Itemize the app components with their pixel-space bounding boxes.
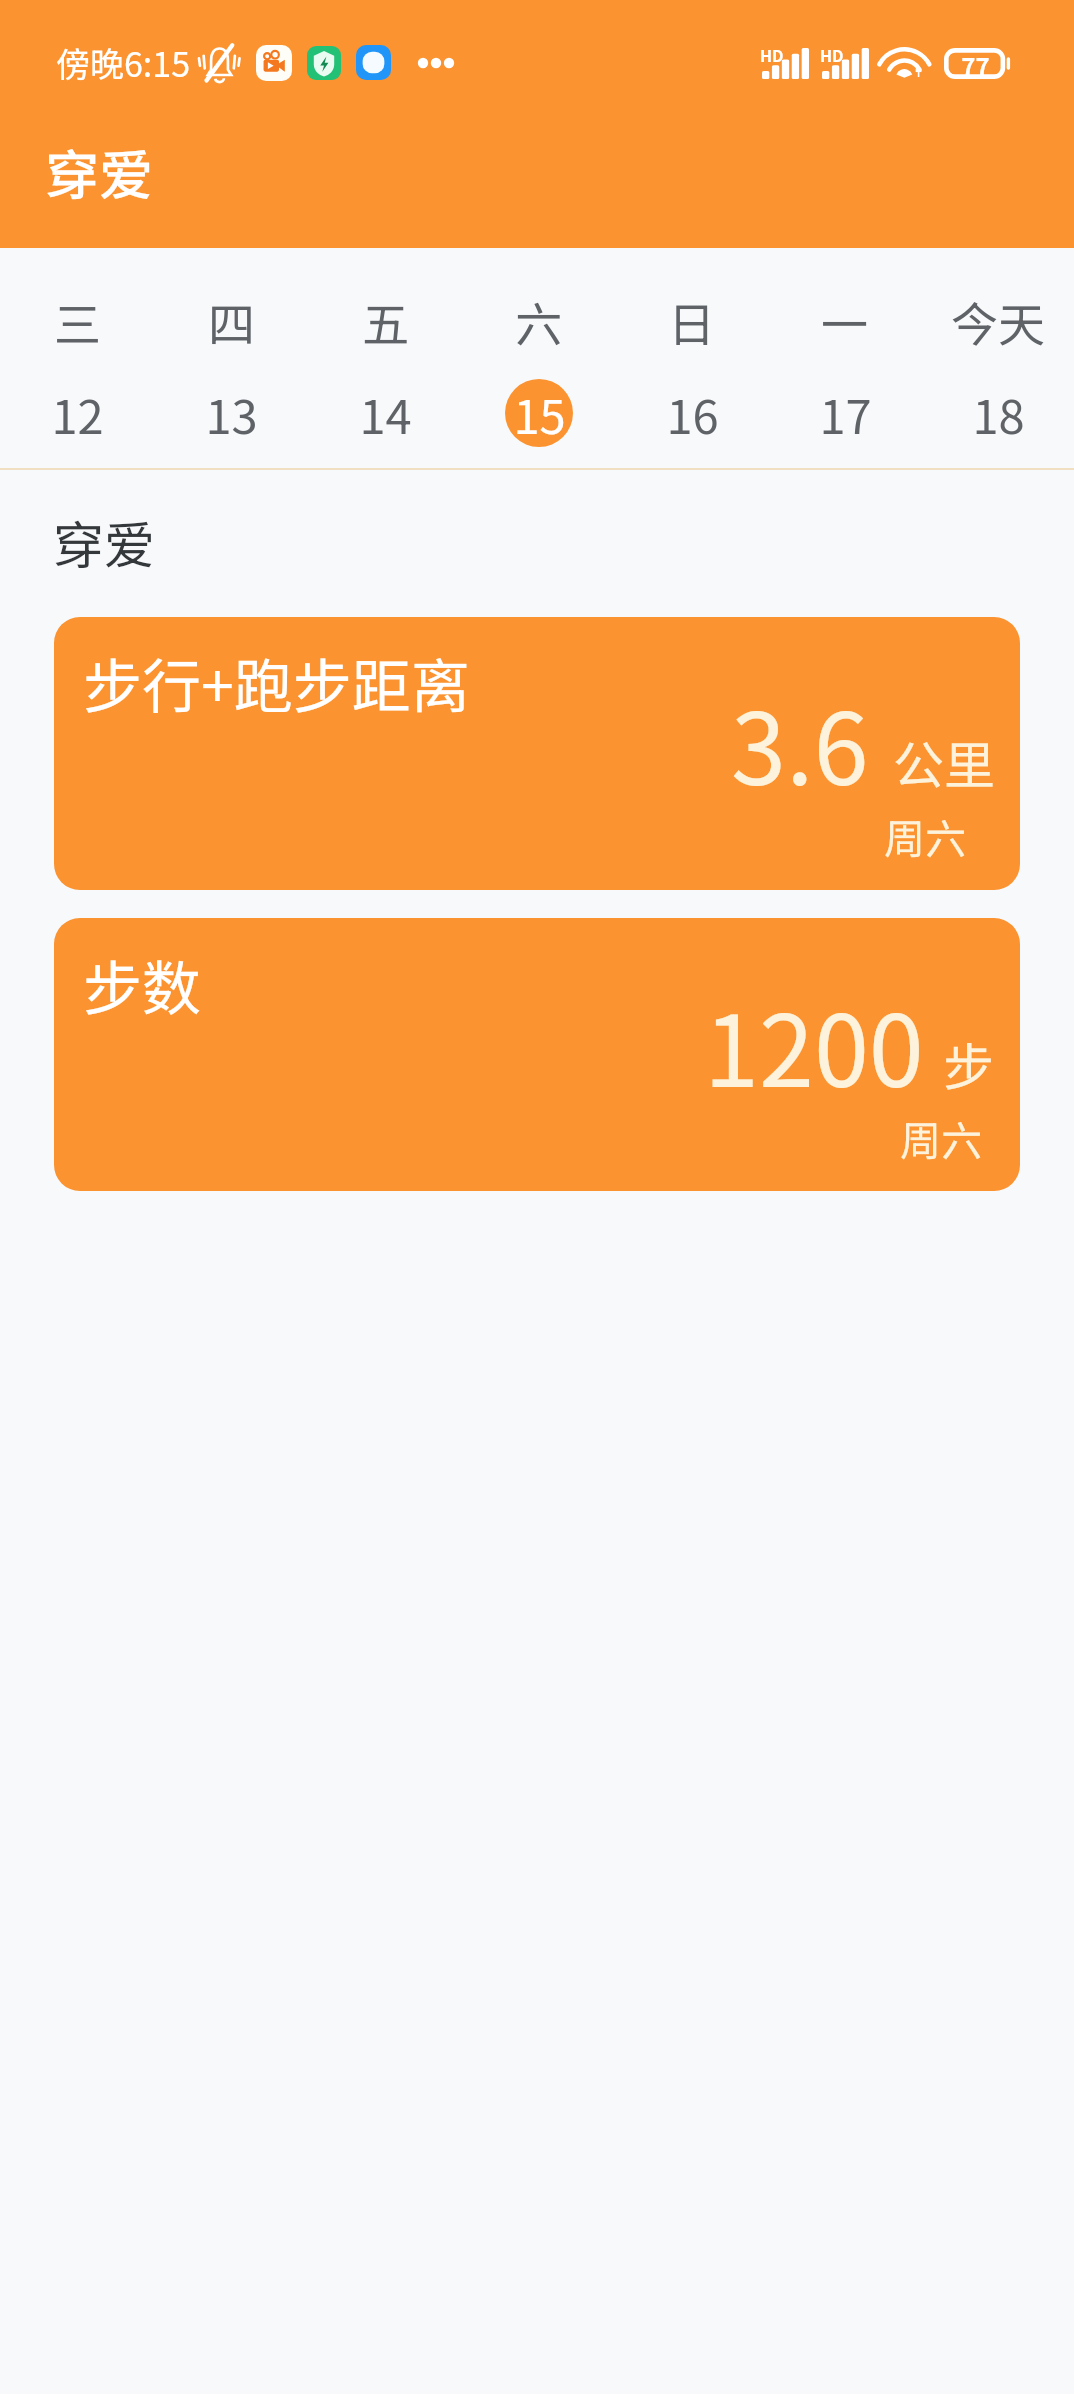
staticText: 五 — [362, 287, 409, 355]
staticText: 16 — [666, 379, 719, 447]
staticText: 13 — [205, 379, 258, 447]
other: More notifications — [414, 52, 458, 74]
button[interactable]: 一 — [768, 248, 921, 468]
staticText: 三 — [54, 287, 101, 355]
button[interactable]: 步数 — [54, 918, 1020, 1191]
button[interactable]: 四 — [154, 248, 308, 468]
staticText: 3.6 — [731, 670, 869, 813]
staticText: 1200 — [704, 972, 924, 1115]
staticText: 六 — [515, 287, 562, 355]
other: Battery 77 percent — [944, 48, 1012, 79]
staticText: 15 — [513, 379, 566, 447]
staticText: 今天 — [951, 287, 1045, 355]
staticText: HD — [820, 43, 844, 66]
staticText: 77 — [961, 48, 990, 79]
staticText: 公里 — [893, 725, 996, 799]
other: Wi-Fi — [886, 46, 925, 79]
staticText: 17 — [819, 379, 872, 447]
other: Video app notification — [256, 45, 292, 81]
staticText: 步数 — [83, 942, 202, 1027]
other: Silent mode — [193, 40, 245, 86]
button[interactable]: 今天 — [921, 248, 1074, 468]
staticText: 穿爱 — [45, 132, 153, 210]
staticText: 日 — [668, 287, 715, 355]
button[interactable]: 三 — [0, 248, 154, 468]
button[interactable]: 六 — [462, 248, 615, 468]
staticText: 傍晚6:15 — [56, 38, 191, 87]
staticText: 18 — [972, 379, 1025, 447]
staticText: 四 — [208, 287, 255, 355]
button[interactable]: 日 — [615, 248, 768, 468]
staticText: HD — [760, 43, 784, 66]
staticText: 步行+跑步距离 — [83, 640, 470, 725]
other: Mobile signal — [761, 42, 811, 82]
staticText: 14 — [359, 379, 412, 447]
staticText: 周六 — [884, 806, 966, 865]
staticText: 步 — [943, 1027, 995, 1101]
staticText: 穿爱 — [53, 505, 156, 579]
other: Mobile signal — [821, 42, 871, 82]
other: Security app notification — [307, 46, 341, 80]
button[interactable]: 步行+跑步距离 — [54, 617, 1020, 890]
staticText: 一 — [821, 287, 868, 355]
staticText: 周六 — [900, 1108, 982, 1167]
button[interactable]: 五 — [308, 248, 462, 468]
staticText: 12 — [51, 379, 104, 447]
other: Chat app notification — [356, 45, 391, 80]
